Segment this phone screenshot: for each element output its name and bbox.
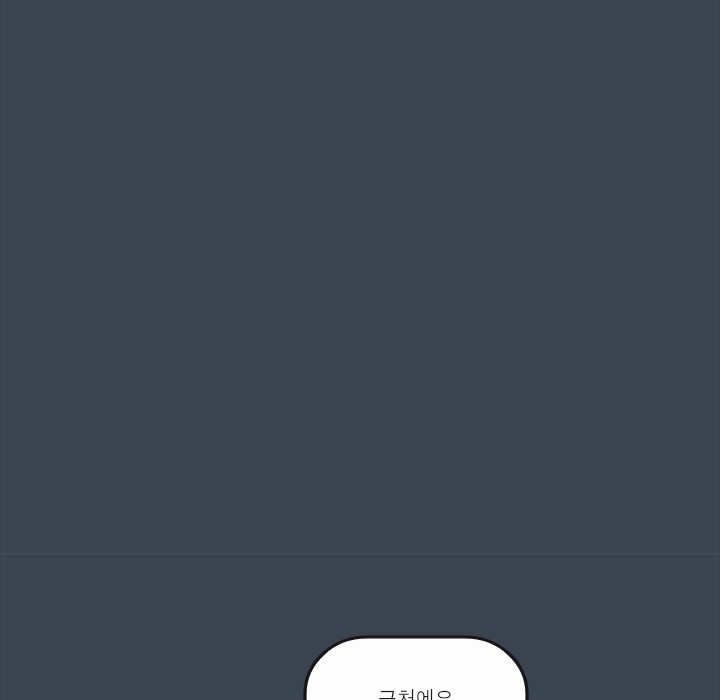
button[interactable]: Webtoon page — [0, 0, 720, 700]
